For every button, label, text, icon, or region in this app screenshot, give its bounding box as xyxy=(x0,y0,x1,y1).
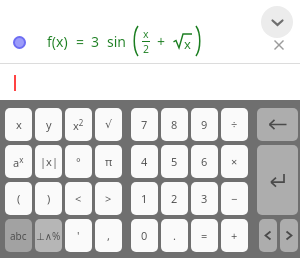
staticText: f(x) xyxy=(47,32,68,51)
button[interactable]: 1 xyxy=(131,182,158,215)
staticText: ⊥∧% xyxy=(36,229,61,243)
button[interactable] xyxy=(257,145,298,215)
button[interactable]: 8 xyxy=(161,108,188,141)
button[interactable]: ) xyxy=(35,182,62,215)
button[interactable]: = xyxy=(191,219,218,252)
button[interactable]: 5 xyxy=(161,145,188,178)
staticText: 2 xyxy=(171,191,178,206)
staticText: abc xyxy=(10,229,27,243)
staticText: ax xyxy=(13,154,24,170)
staticText: π xyxy=(105,154,113,169)
button[interactable]: ° xyxy=(65,145,92,178)
staticText: ( xyxy=(17,191,21,206)
button[interactable]: . xyxy=(161,219,188,252)
button[interactable]: 6 xyxy=(191,145,218,178)
button[interactable] xyxy=(13,36,26,49)
button[interactable]: × xyxy=(221,145,248,178)
button[interactable] xyxy=(257,108,298,141)
button[interactable] xyxy=(261,6,293,38)
button[interactable]: ' xyxy=(65,219,92,252)
staticText: x xyxy=(16,117,22,132)
staticText: − xyxy=(231,191,238,206)
staticText: 7 xyxy=(141,117,148,132)
button[interactable]: + xyxy=(221,219,248,252)
staticText: ' xyxy=(77,228,80,243)
button[interactable]: ( xyxy=(5,182,32,215)
button[interactable]: y xyxy=(35,108,62,141)
button[interactable] xyxy=(259,219,277,252)
button[interactable]: 9 xyxy=(191,108,218,141)
button[interactable]: √ xyxy=(95,108,122,141)
button[interactable]: x xyxy=(5,108,32,141)
staticText: 6 xyxy=(201,154,208,169)
button[interactable]: 3 xyxy=(191,182,218,215)
staticText: = xyxy=(76,32,85,51)
staticText: ÷ xyxy=(231,117,238,132)
staticText: 3 xyxy=(201,191,208,206)
staticText: 1 xyxy=(141,191,148,206)
staticText: 3 xyxy=(91,32,100,51)
button[interactable] xyxy=(0,64,300,100)
staticText: 8 xyxy=(171,117,178,132)
staticText: , xyxy=(107,228,110,243)
staticText: < xyxy=(75,191,82,206)
staticText: > xyxy=(105,191,112,206)
button[interactable]: , xyxy=(95,219,122,252)
staticText: 2 xyxy=(143,42,150,56)
button[interactable]: abc xyxy=(5,219,32,252)
staticText: x2 xyxy=(73,117,84,133)
staticText: 9 xyxy=(201,117,208,132)
staticText: ° xyxy=(76,154,81,169)
staticText: 0 xyxy=(141,228,148,243)
button[interactable]: f(x) xyxy=(47,22,202,60)
button[interactable]: ÷ xyxy=(221,108,248,141)
staticText: + xyxy=(157,32,166,51)
staticText: × xyxy=(231,154,238,169)
button[interactable]: − xyxy=(221,182,248,215)
staticText: x xyxy=(184,35,191,52)
button[interactable]: 0 xyxy=(131,219,158,252)
staticText: √ xyxy=(105,118,113,131)
staticText: x xyxy=(143,27,149,41)
button[interactable]: 7 xyxy=(131,108,158,141)
staticText: 5 xyxy=(171,154,178,169)
staticText: = xyxy=(201,228,208,243)
button[interactable]: 2 xyxy=(161,182,188,215)
button[interactable]: 4 xyxy=(131,145,158,178)
button[interactable]: x2 xyxy=(65,108,92,141)
button[interactable] xyxy=(280,219,298,252)
staticText: + xyxy=(231,228,238,243)
button[interactable]: |x| xyxy=(35,145,62,178)
button[interactable]: π xyxy=(95,145,122,178)
staticText: |x| xyxy=(40,154,58,169)
staticText: y xyxy=(46,117,52,132)
staticText: ) xyxy=(47,191,51,206)
button[interactable]: > xyxy=(95,182,122,215)
staticText: sin xyxy=(107,32,126,51)
button[interactable]: < xyxy=(65,182,92,215)
button[interactable]: ax xyxy=(5,145,32,178)
button[interactable]: ⊥∧% xyxy=(35,219,62,252)
button[interactable] xyxy=(273,39,285,51)
staticText: . xyxy=(173,228,176,243)
staticText: 4 xyxy=(141,154,148,169)
